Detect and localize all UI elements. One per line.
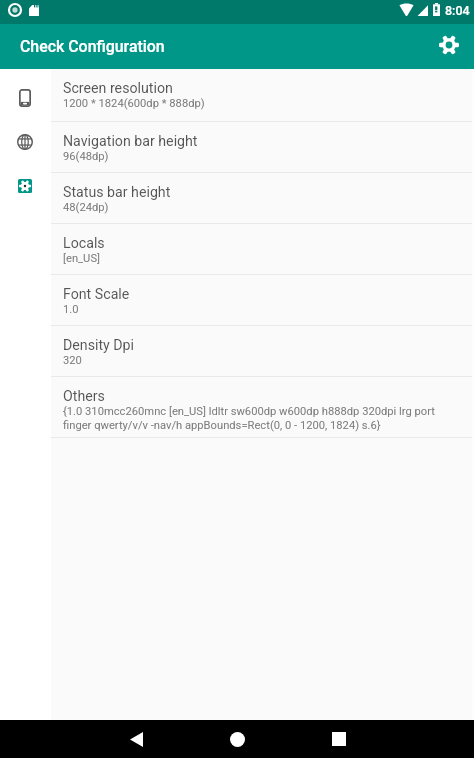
button[interactable]: Configuration — [5, 166, 45, 206]
staticText: Navigation bar height — [63, 133, 198, 150]
staticText: Others — [63, 388, 105, 405]
staticText: {1.0 310mcc260mnc [en_US] ldltr sw600dp … — [63, 405, 452, 432]
button[interactable]: Back — [116, 720, 157, 758]
staticText: 48(24dp) — [63, 201, 109, 214]
staticText: Screen resolution — [63, 80, 173, 97]
staticText: 320 — [63, 354, 82, 367]
staticText: [en_US] — [63, 252, 100, 265]
button[interactable]: Network — [5, 122, 45, 162]
staticText: Check Configuration — [20, 37, 165, 56]
button[interactable]: Density Dpi — [51, 326, 474, 377]
staticText: Density Dpi — [63, 337, 135, 354]
button[interactable]: Device — [5, 78, 45, 118]
button[interactable]: Settings — [432, 28, 466, 62]
button[interactable]: Others — [51, 377, 474, 438]
button[interactable]: Navigation bar height — [51, 122, 474, 173]
button[interactable]: Home — [217, 720, 257, 758]
staticText: Font Scale — [63, 286, 130, 303]
staticText: 8:04 — [445, 3, 470, 18]
staticText: Status bar height — [63, 184, 171, 201]
button[interactable]: Locals — [51, 224, 474, 275]
staticText: 1200 * 1824(600dp * 888dp) — [63, 97, 205, 110]
staticText: 96(48dp) — [63, 150, 109, 163]
staticText: 1.0 — [63, 303, 79, 316]
button[interactable]: Recents — [318, 720, 359, 758]
button[interactable]: Status bar height — [51, 173, 474, 224]
staticText: Locals — [63, 235, 105, 252]
button[interactable]: Screen resolution — [51, 69, 474, 122]
button[interactable]: Font Scale — [51, 275, 474, 326]
